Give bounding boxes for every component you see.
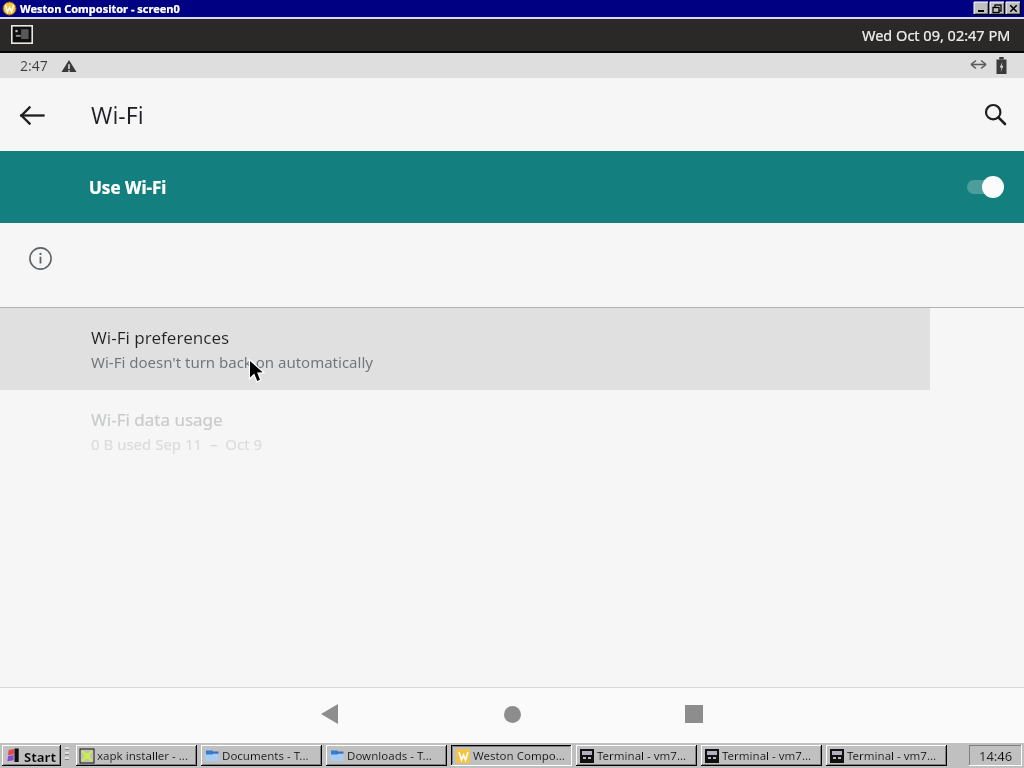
button[interactable]: Home (488, 690, 536, 738)
button[interactable]: Weston terminal (11, 25, 33, 44)
button[interactable]: Navigate up (10, 93, 54, 137)
staticText: Start (24, 748, 57, 766)
button[interactable]: Wi-Fi data usage (0, 390, 1024, 472)
button[interactable]: Information (22, 240, 58, 276)
staticText: Weston Compo... (473, 748, 565, 764)
staticText: Weston Compositor - screen0 (20, 1, 180, 16)
button[interactable]: Close (1006, 2, 1021, 15)
button[interactable]: Search (974, 93, 1018, 137)
staticText: 0 B used Sep 11 – Oct 9 (91, 434, 263, 454)
staticText: Documents - T... (222, 748, 309, 764)
staticText: 2:47 (20, 56, 48, 75)
button[interactable]: Start menu (2, 745, 61, 766)
button[interactable]: Terminal - vm7... (701, 745, 822, 766)
button[interactable]: xapk installer - ... (76, 745, 197, 766)
staticText: Use Wi-Fi (89, 176, 167, 199)
staticText: Terminal - vm7... (722, 748, 812, 764)
staticText: Downloads - T... (347, 748, 432, 764)
button[interactable]: Recent apps (670, 690, 718, 738)
staticText: Terminal - vm7... (847, 748, 937, 764)
button[interactable]: Wi-Fi preferences (0, 308, 930, 390)
staticText: Wi-Fi (91, 99, 144, 130)
staticText: Wi-Fi preferences (91, 326, 230, 349)
button[interactable]: Use Wi-Fi toggle (965, 175, 1003, 199)
staticText: 14:46 (979, 747, 1013, 765)
staticText: Wi-Fi data usage (91, 408, 223, 431)
button[interactable]: Downloads - T... (326, 745, 447, 766)
button[interactable]: Documents - T... (201, 745, 322, 766)
button[interactable]: Back (305, 690, 353, 738)
staticText: Wi-Fi doesn't turn back on automatically (91, 352, 373, 372)
staticText: Wed Oct 09, 02:47 PM (862, 25, 1011, 45)
button[interactable]: Use Wi-Fi (0, 151, 1024, 223)
button[interactable]: Terminal - vm7... (576, 745, 697, 766)
button[interactable]: Weston Compo... (451, 745, 572, 766)
button[interactable]: Terminal - vm7... (826, 745, 947, 766)
staticText: xapk installer - ... (97, 748, 189, 764)
button[interactable]: Maximize (990, 2, 1005, 15)
staticText: Terminal - vm7... (597, 748, 687, 764)
button[interactable]: Minimize (974, 2, 989, 15)
